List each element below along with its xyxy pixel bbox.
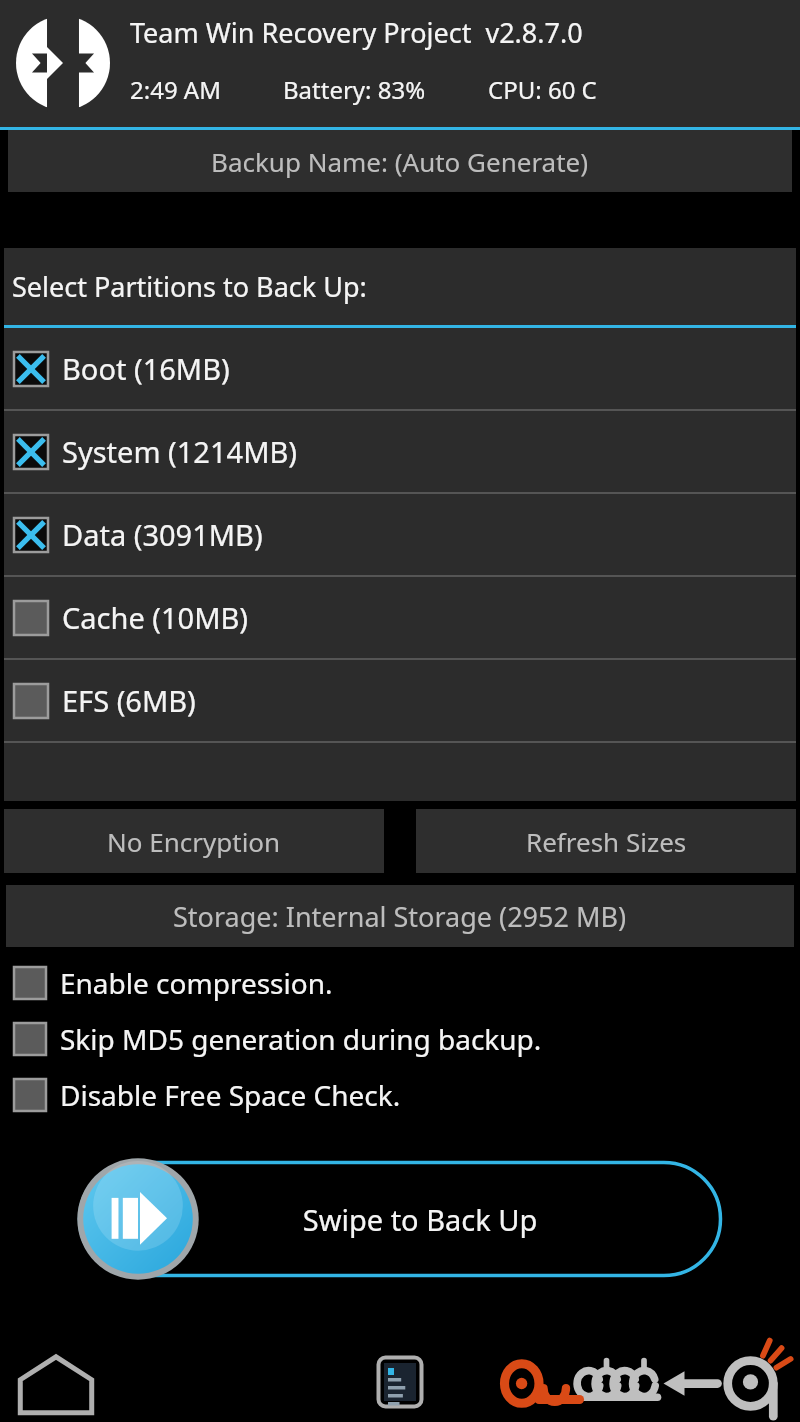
staticText: Swipe to Back Up	[118, 1200, 722, 1239]
button[interactable]: Disable Free Space Check.	[0, 1067, 800, 1123]
staticText: Skip MD5 generation during backup.	[60, 1020, 542, 1058]
staticText: Boot (16MB)	[62, 349, 230, 388]
staticText: Data (3091MB)	[62, 515, 263, 554]
button[interactable]: System (1214MB)	[4, 411, 796, 492]
button[interactable]: No Encryption	[4, 809, 384, 873]
staticText: No Encryption	[107, 824, 281, 859]
staticText: CPU: 60 C	[488, 73, 597, 106]
staticText: EFS (6MB)	[62, 681, 196, 720]
staticText: Cache (10MB)	[62, 598, 249, 637]
staticText: System (1214MB)	[62, 432, 297, 471]
staticText: Refresh Sizes	[526, 824, 687, 859]
button[interactable]: Skip MD5 generation during backup.	[0, 1011, 800, 1067]
button[interactable]: Enable compression.	[0, 955, 800, 1011]
button[interactable]: Backup Name: (Auto Generate)	[8, 130, 792, 192]
button[interactable]: Boot (16MB)	[4, 328, 796, 409]
staticText: Battery: 83%	[283, 73, 426, 106]
staticText: Disable Free Space Check.	[60, 1076, 401, 1114]
button[interactable]: Home	[8, 1346, 104, 1418]
staticText: 2:49 AM	[130, 73, 221, 106]
button[interactable]: EFS (6MB)	[4, 660, 796, 741]
button[interactable]: Storage: Internal Storage (2952 MB)	[6, 885, 794, 947]
staticText: Storage: Internal Storage (2952 MB)	[173, 898, 627, 935]
staticText: Team Win Recovery Project v2.8.7.0	[130, 14, 583, 51]
button[interactable]: Swipe to Back Up	[78, 1153, 722, 1285]
staticText: Enable compression.	[60, 964, 333, 1002]
button[interactable]: Data (3091MB)	[4, 494, 796, 575]
staticText: Backup Name: (Auto Generate)	[211, 144, 589, 179]
button[interactable]: Cache (10MB)	[4, 577, 796, 658]
staticText: Select Partitions to Back Up:	[12, 268, 367, 305]
button[interactable]: Log	[364, 1346, 436, 1418]
button[interactable]: Refresh Sizes	[416, 809, 796, 873]
